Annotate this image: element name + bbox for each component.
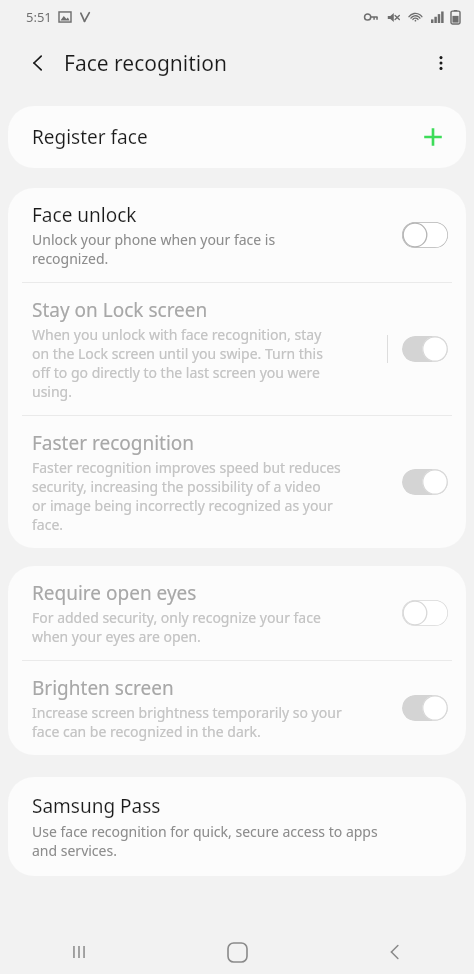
button[interactable]: Off <box>402 600 448 626</box>
staticText: Unlock your phone when your face is reco… <box>32 230 276 268</box>
staticText: Stay on Lock screen <box>32 297 208 323</box>
staticText: For added security, only recognize your … <box>32 608 321 646</box>
button[interactable]: Require open eyes <box>8 566 466 660</box>
button[interactable]: More options <box>420 42 462 84</box>
staticText: Face unlock <box>32 202 137 228</box>
staticText: Faster recognition improves speed but re… <box>32 458 341 534</box>
button[interactable]: Home <box>209 930 265 974</box>
button[interactable]: Back <box>18 43 58 83</box>
button[interactable]: Off <box>402 222 448 248</box>
staticText: Register face <box>32 124 422 150</box>
button[interactable]: Back <box>367 930 423 974</box>
button[interactable]: Face unlock <box>8 188 466 282</box>
staticText: Require open eyes <box>32 580 197 606</box>
button[interactable]: Brighten screen <box>8 661 466 755</box>
staticText: Faster recognition <box>32 430 195 456</box>
staticText: Brighten screen <box>32 675 174 701</box>
button[interactable]: Samsung Pass <box>8 777 466 876</box>
staticText: 5:51 <box>26 8 52 26</box>
staticText: Increase screen brightness temporarily s… <box>32 703 342 741</box>
button[interactable]: Stay on Lock screen <box>8 283 466 415</box>
button[interactable]: Recents <box>51 930 107 974</box>
button[interactable]: Register face <box>8 106 466 168</box>
button[interactable]: On <box>402 336 448 362</box>
button[interactable]: On <box>402 695 448 721</box>
button[interactable]: Faster recognition <box>8 416 466 548</box>
staticText: Use face recognition for quick, secure a… <box>32 822 378 860</box>
staticText: When you unlock with face recognition, s… <box>32 325 323 401</box>
staticText: Samsung Pass <box>32 793 161 819</box>
staticText: Face recognition <box>64 49 227 78</box>
button[interactable]: On <box>402 469 448 495</box>
